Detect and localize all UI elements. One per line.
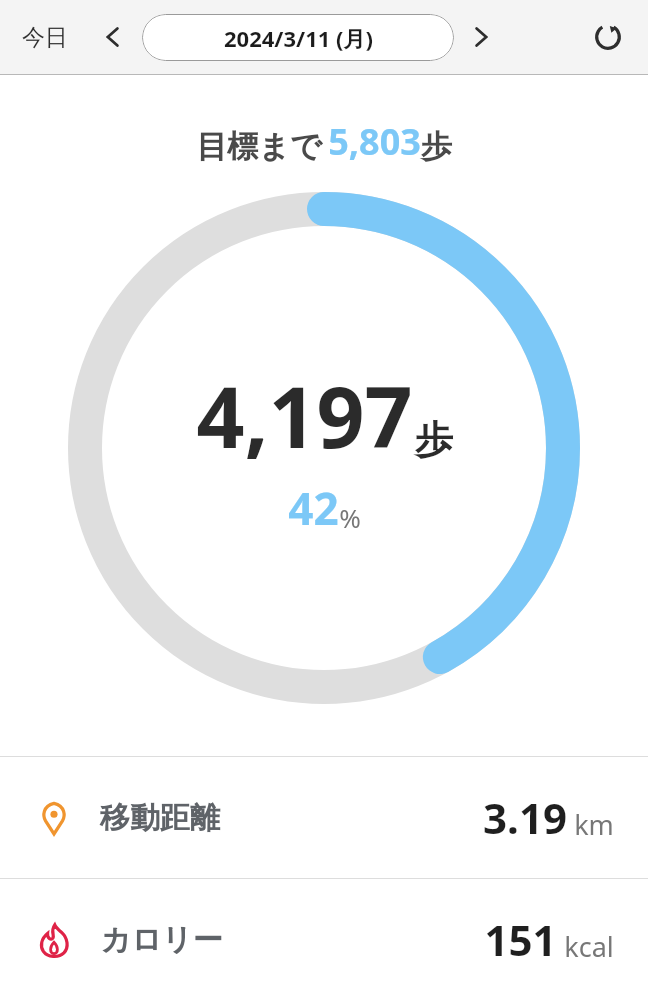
staticText: 歩 <box>421 127 452 166</box>
button[interactable]: 前の日 <box>90 14 136 60</box>
button[interactable]: 移動距離 <box>0 757 648 878</box>
button[interactable]: 更新 <box>584 13 632 61</box>
staticText: 42 <box>288 478 339 538</box>
staticText: 3.19 <box>483 789 567 846</box>
other: カロリー <box>34 920 74 960</box>
button[interactable]: 次の日 <box>458 14 504 60</box>
button[interactable]: 2024/3/11 (月) <box>142 14 454 61</box>
button[interactable]: 今日 <box>14 17 76 58</box>
staticText: kcal <box>564 928 614 965</box>
staticText: 目標まで <box>196 127 322 166</box>
staticText: 歩 <box>415 416 453 464</box>
staticText: 移動距離 <box>100 799 220 837</box>
staticText: 2024/3/11 (月) <box>224 23 373 53</box>
staticText: 5,803 <box>328 117 421 166</box>
button[interactable]: カロリー <box>0 879 648 1000</box>
staticText: 4,197 <box>196 358 413 472</box>
staticText: % <box>339 500 361 535</box>
staticText: 151 <box>484 911 557 968</box>
other: 移動距離 <box>34 798 74 838</box>
staticText: カロリー <box>100 921 223 959</box>
staticText: km <box>574 806 614 843</box>
staticText: 今日 <box>22 23 68 52</box>
